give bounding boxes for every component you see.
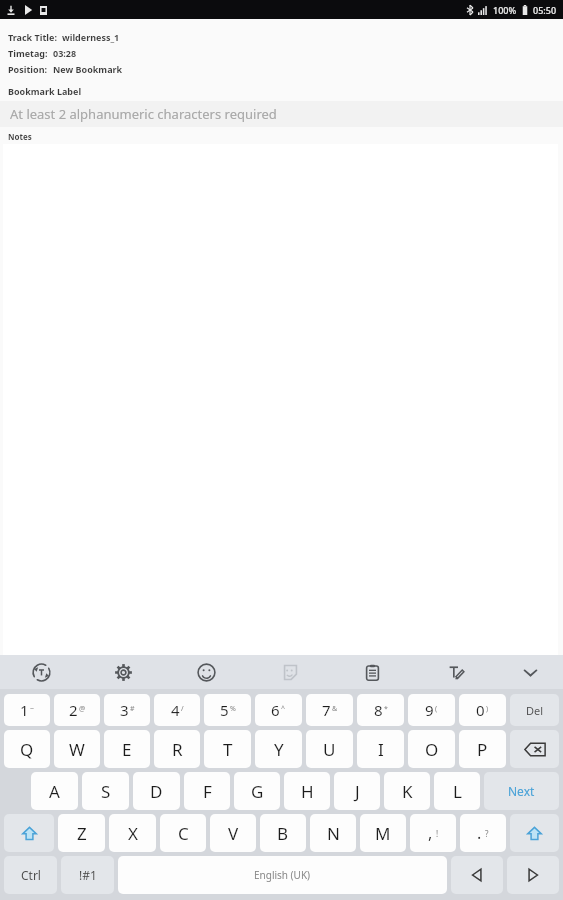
button[interactable]: V bbox=[210, 814, 256, 852]
button[interactable]: Shift bbox=[510, 814, 559, 852]
staticText: 03:28 bbox=[53, 47, 77, 59]
button[interactable]: K bbox=[384, 772, 430, 810]
button[interactable]: L bbox=[434, 772, 480, 810]
button[interactable]: O bbox=[408, 730, 455, 768]
button[interactable]: Clipboard bbox=[331, 655, 414, 689]
button[interactable]: Delete bbox=[510, 694, 559, 726]
button[interactable]: I bbox=[357, 730, 404, 768]
button[interactable]: E bbox=[104, 730, 150, 768]
button[interactable]: N bbox=[310, 814, 356, 852]
staticText: D bbox=[150, 780, 163, 803]
staticText: 1 bbox=[20, 700, 29, 720]
button[interactable]: Move cursor right bbox=[507, 856, 559, 894]
button[interactable]: . bbox=[460, 814, 506, 852]
staticText: 05:50 bbox=[533, 4, 557, 16]
button[interactable]: 1 bbox=[4, 694, 50, 726]
button[interactable]: 2 bbox=[54, 694, 100, 726]
button[interactable]: H bbox=[284, 772, 330, 810]
button[interactable]: !#1 bbox=[61, 856, 114, 894]
staticText: Y bbox=[274, 738, 284, 761]
staticText: I bbox=[378, 738, 384, 761]
staticText: Del bbox=[526, 703, 544, 718]
staticText: V bbox=[228, 822, 239, 845]
button[interactable]: 8 bbox=[357, 694, 404, 726]
staticText: Notes bbox=[8, 131, 32, 142]
button[interactable]: Handwriting bbox=[414, 655, 497, 689]
button[interactable]: T bbox=[204, 730, 251, 768]
staticText: A bbox=[49, 780, 60, 803]
staticText: S bbox=[101, 780, 111, 803]
staticText: H bbox=[301, 780, 314, 803]
staticText: ( bbox=[435, 704, 438, 714]
button[interactable]: A bbox=[31, 772, 78, 810]
button[interactable]: Translate bbox=[0, 655, 82, 689]
button[interactable]: Q bbox=[4, 730, 50, 768]
button[interactable]: J bbox=[334, 772, 380, 810]
staticText: ) bbox=[486, 704, 489, 714]
staticText: 100% bbox=[493, 4, 517, 16]
button[interactable]: X bbox=[109, 814, 156, 852]
staticText: . bbox=[477, 822, 482, 844]
button[interactable]: 0 bbox=[459, 694, 506, 726]
button[interactable]: 3 bbox=[104, 694, 150, 726]
staticText: Timetag: bbox=[8, 47, 48, 59]
staticText: # bbox=[130, 704, 135, 714]
button[interactable]: Move cursor left bbox=[451, 856, 503, 894]
button[interactable]: U bbox=[306, 730, 353, 768]
button[interactable]: Ctrl bbox=[4, 856, 57, 894]
staticText: L bbox=[453, 780, 462, 803]
staticText: 4 bbox=[171, 700, 180, 720]
button[interactable]: W bbox=[54, 730, 100, 768]
staticText: K bbox=[402, 780, 413, 803]
staticText: ? bbox=[485, 828, 489, 839]
button[interactable]: C bbox=[160, 814, 206, 852]
staticText: , bbox=[428, 822, 433, 844]
button[interactable]: Stickers bbox=[248, 655, 331, 689]
button[interactable]: 6 bbox=[255, 694, 302, 726]
button[interactable]: R bbox=[154, 730, 200, 768]
staticText: !#1 bbox=[79, 867, 97, 883]
button[interactable]: Z bbox=[58, 814, 105, 852]
staticText: * bbox=[384, 704, 388, 714]
staticText: R bbox=[172, 738, 183, 761]
button[interactable]: G bbox=[234, 772, 280, 810]
staticText: Position: bbox=[8, 63, 48, 75]
staticText: New Bookmark bbox=[53, 63, 123, 75]
button[interactable]: Emoji bbox=[165, 655, 248, 689]
button[interactable]: Y bbox=[255, 730, 302, 768]
staticText: F bbox=[203, 780, 212, 803]
button[interactable]: D bbox=[133, 772, 180, 810]
button[interactable]: 5 bbox=[204, 694, 251, 726]
staticText: 5 bbox=[220, 700, 229, 720]
staticText: E bbox=[122, 738, 132, 761]
button[interactable]: , bbox=[410, 814, 456, 852]
button[interactable]: M bbox=[360, 814, 406, 852]
button[interactable]: B bbox=[260, 814, 306, 852]
staticText: wilderness_1 bbox=[62, 31, 120, 43]
staticText: U bbox=[323, 738, 336, 761]
staticText: / bbox=[181, 704, 184, 714]
staticText: 8 bbox=[374, 700, 383, 720]
button[interactable]: 7 bbox=[306, 694, 353, 726]
button[interactable]: S bbox=[82, 772, 129, 810]
button[interactable]: P bbox=[459, 730, 506, 768]
staticText: Track Title: bbox=[8, 31, 57, 43]
button[interactable]: Next bbox=[484, 772, 559, 810]
button[interactable]: F bbox=[184, 772, 230, 810]
button[interactable]: Settings bbox=[82, 655, 165, 689]
button[interactable]: Shift bbox=[4, 814, 54, 852]
staticText: Q bbox=[20, 738, 34, 761]
button[interactable]: At least 2 alphanumeric characters requi… bbox=[0, 101, 563, 127]
button[interactable]: 9 bbox=[408, 694, 455, 726]
button[interactable]: 4 bbox=[154, 694, 200, 726]
staticText: Bookmark Label bbox=[8, 85, 82, 97]
staticText: 6 bbox=[271, 700, 280, 720]
staticText: M bbox=[375, 822, 391, 845]
button[interactable]: Hide keyboard bbox=[497, 655, 563, 689]
staticText: @ bbox=[79, 704, 86, 714]
button[interactable]: Backspace bbox=[510, 730, 559, 768]
staticText: ^ bbox=[281, 704, 286, 714]
button[interactable]: Space bbox=[118, 856, 447, 894]
staticText: Next bbox=[508, 783, 535, 799]
